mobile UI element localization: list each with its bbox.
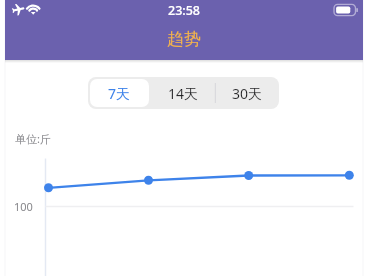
other: Wi-Fi — [26, 2, 41, 17]
other: Airplane mode — [10, 2, 25, 17]
staticText: 14天 — [168, 84, 199, 103]
staticText: 23:58 — [168, 2, 201, 19]
staticText: 趋势 — [167, 29, 201, 50]
button[interactable]: 30天 — [217, 79, 277, 107]
staticText: 30天 — [232, 84, 263, 103]
other: Battery — [334, 3, 360, 17]
button[interactable]: 7天 — [90, 79, 149, 107]
staticText: 单位:斤 — [15, 131, 51, 146]
staticText: 100 — [14, 199, 33, 214]
staticText: 7天 — [108, 84, 131, 103]
button[interactable]: 14天 — [153, 79, 213, 107]
